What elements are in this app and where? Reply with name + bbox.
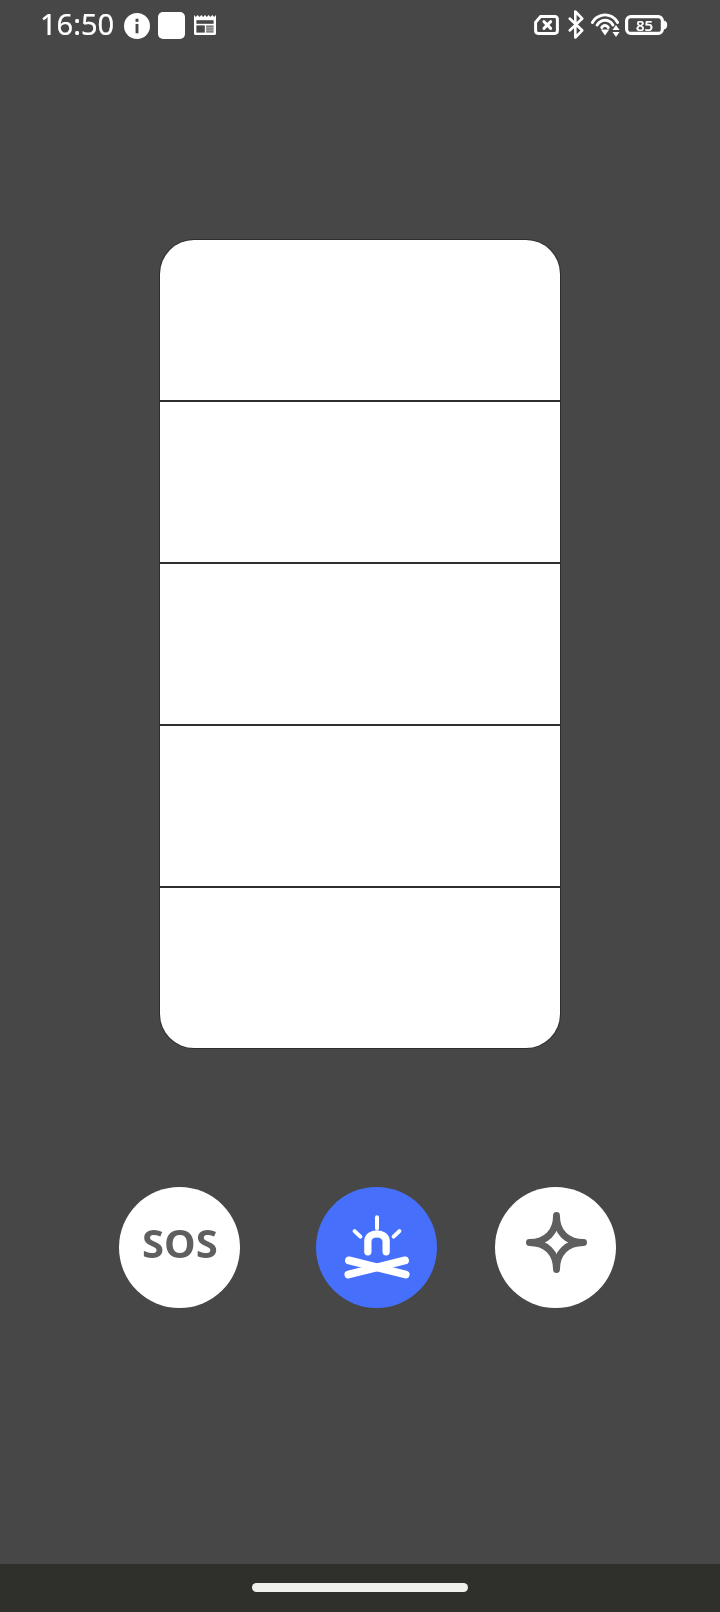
button[interactable] xyxy=(160,240,560,400)
staticText: 16:50 xyxy=(40,4,115,43)
button[interactable]: Sparkle xyxy=(495,1187,616,1308)
button[interactable]: SOS xyxy=(119,1187,240,1308)
button[interactable]: Home xyxy=(252,1583,468,1592)
staticText: SOS xyxy=(142,1215,218,1269)
button[interactable] xyxy=(160,888,560,1048)
staticText: 85 xyxy=(636,15,654,35)
button[interactable]: Campfire xyxy=(316,1187,437,1308)
